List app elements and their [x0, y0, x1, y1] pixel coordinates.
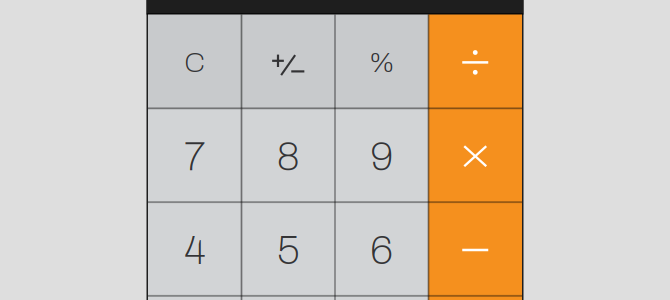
- button[interactable]: 5: [241, 202, 335, 296]
- button[interactable]: 7: [148, 108, 241, 202]
- button[interactable]: 6: [335, 202, 428, 296]
- staticText: %: [369, 47, 395, 78]
- staticText: 5: [277, 229, 300, 272]
- button[interactable]: %: [335, 14, 428, 108]
- button[interactable]: 1: [148, 296, 241, 300]
- staticText: 6: [370, 229, 393, 272]
- staticText: 9: [370, 135, 393, 178]
- button[interactable]: 2: [241, 296, 335, 300]
- button[interactable]: Multiply: [428, 108, 522, 202]
- button[interactable]: Divide: [428, 14, 522, 108]
- button[interactable]: 9: [335, 108, 428, 202]
- button[interactable]: Plus minus: [241, 14, 335, 108]
- button[interactable]: Subtract: [428, 202, 522, 296]
- button[interactable]: Add: [428, 296, 522, 300]
- staticText: C: [184, 47, 205, 78]
- staticText: 8: [277, 135, 300, 178]
- button[interactable]: 3: [335, 296, 428, 300]
- staticText: 4: [184, 229, 205, 272]
- button[interactable]: 8: [241, 108, 335, 202]
- staticText: 7: [184, 135, 205, 178]
- button[interactable]: 4: [148, 202, 241, 296]
- button[interactable]: C: [148, 14, 241, 108]
